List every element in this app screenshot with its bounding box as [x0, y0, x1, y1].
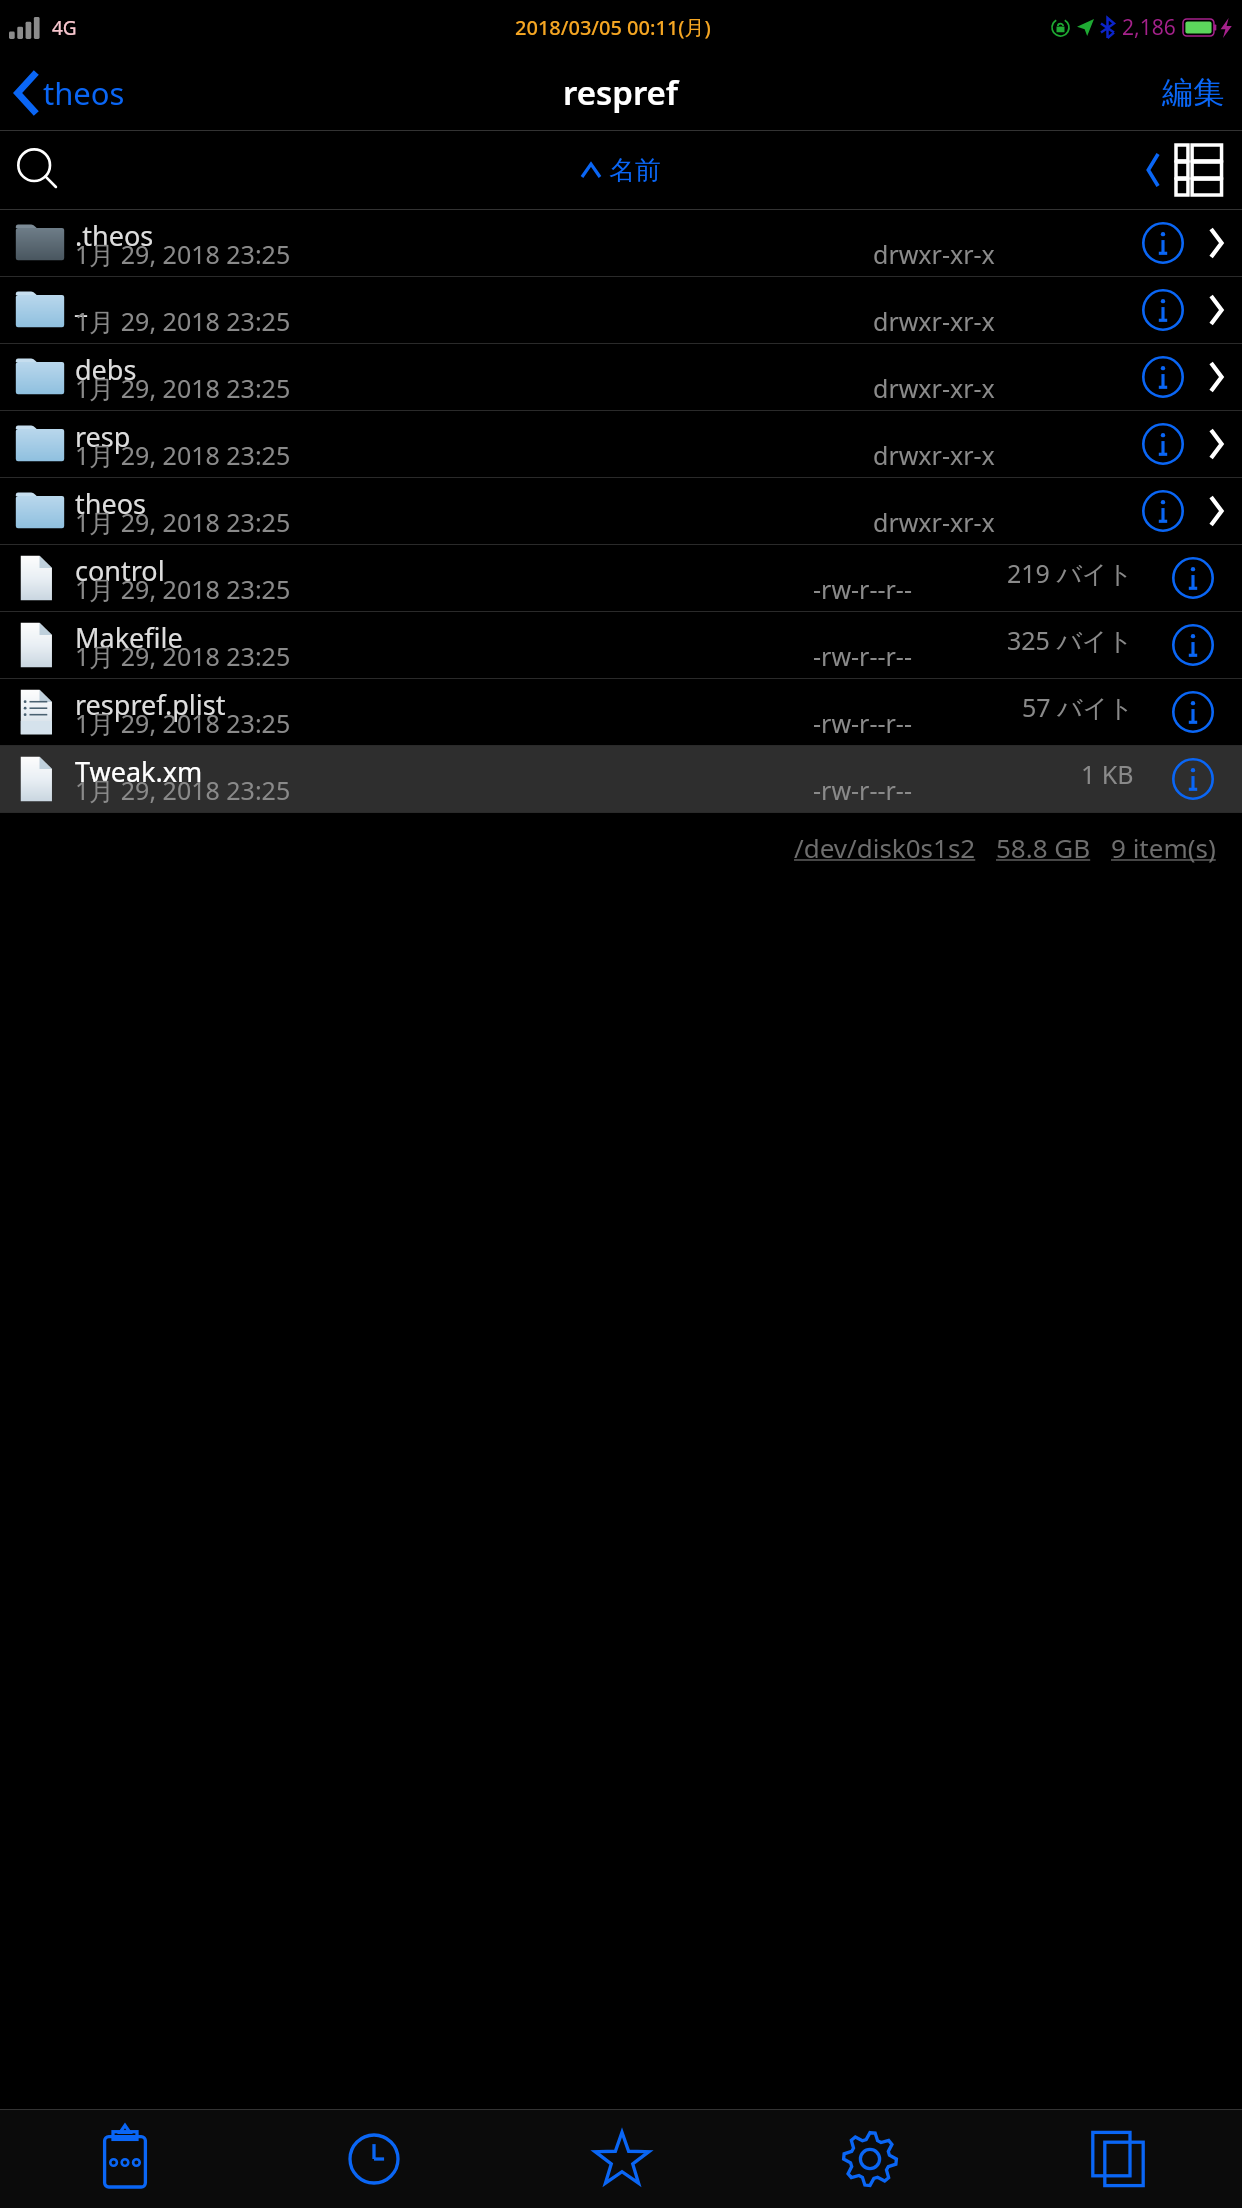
button[interactable]: Info: [1169, 688, 1217, 736]
button[interactable]: theos: [0, 478, 1242, 544]
button[interactable]: Favorites: [498, 2110, 746, 2208]
staticText: 1月 29, 2018 23:25: [75, 572, 291, 606]
button[interactable]: Info: [1169, 554, 1217, 602]
button[interactable]: Info: [1169, 621, 1217, 669]
staticText: Makefile: [75, 619, 183, 656]
staticText: -rw-r--r--: [813, 706, 912, 740]
button[interactable]: 編集: [1144, 61, 1242, 124]
staticText: drwxr-xr-x: [873, 505, 995, 539]
staticText: -rw-r--r--: [813, 572, 912, 606]
staticText: drwxr-xr-x: [873, 304, 995, 338]
staticText: 名前: [609, 154, 661, 187]
button[interactable]: 名前: [566, 144, 677, 197]
staticText: debs: [75, 351, 137, 388]
staticText: 1月 29, 2018 23:25: [75, 773, 291, 807]
button[interactable]: theos: [0, 63, 139, 123]
button[interactable]: Open: [1194, 355, 1238, 399]
staticText: 1 KB: [1081, 757, 1134, 791]
button[interactable]: Search: [0, 146, 76, 194]
staticText: theos: [43, 72, 125, 114]
button[interactable]: Info: [1139, 353, 1187, 401]
button[interactable]: 58.8 GB: [996, 830, 1091, 865]
button[interactable]: View mode: [1172, 137, 1232, 203]
button[interactable]: Info: [1139, 219, 1187, 267]
button[interactable]: Info: [1139, 286, 1187, 334]
button[interactable]: Settings: [746, 2110, 994, 2208]
button[interactable]: Info: [1169, 755, 1217, 803]
staticText: 1月 29, 2018 23:25: [75, 639, 291, 673]
staticText: drwxr-xr-x: [873, 237, 995, 271]
staticText: resp: [75, 418, 131, 455]
button[interactable]: Recents: [249, 2110, 498, 2208]
staticText: drwxr-xr-x: [873, 438, 995, 472]
staticText: -rw-r--r--: [813, 773, 912, 807]
button[interactable]: Info: [1139, 420, 1187, 468]
staticText: control: [75, 552, 165, 589]
staticText: respref.plist: [75, 686, 226, 723]
button[interactable]: /dev/disk0s1s2: [794, 830, 976, 865]
staticText: 1月 29, 2018 23:25: [75, 237, 291, 271]
button[interactable]: 9 item(s): [1111, 830, 1216, 865]
staticText: 57 バイト: [1022, 690, 1134, 724]
staticText: theos: [75, 485, 146, 522]
staticText: respref: [563, 70, 679, 115]
button[interactable]: Clipboard: [0, 2110, 249, 2208]
staticText: 325 バイト: [1007, 623, 1134, 657]
staticText: _: [75, 284, 87, 321]
button[interactable]: Windows: [994, 2110, 1242, 2208]
button[interactable]: Open: [1194, 422, 1238, 466]
button[interactable]: Open: [1194, 221, 1238, 265]
button[interactable]: _: [0, 277, 1242, 343]
staticText: drwxr-xr-x: [873, 371, 995, 405]
staticText: Tweak.xm: [75, 753, 203, 790]
button[interactable]: respref.plist: [0, 679, 1242, 745]
staticText: 1月 29, 2018 23:25: [75, 371, 291, 405]
button[interactable]: control: [0, 545, 1242, 611]
staticText: -rw-r--r--: [813, 639, 912, 673]
button[interactable]: .theos: [0, 210, 1242, 276]
staticText: 2,186: [1122, 13, 1176, 42]
button[interactable]: Open: [1194, 489, 1238, 533]
staticText: 219 バイト: [1007, 556, 1134, 590]
button[interactable]: debs: [0, 344, 1242, 410]
button[interactable]: Info: [1139, 487, 1187, 535]
staticText: 1月 29, 2018 23:25: [75, 438, 291, 472]
button[interactable]: Previous: [1139, 146, 1168, 194]
staticText: 4G: [52, 15, 77, 41]
staticText: 1月 29, 2018 23:25: [75, 505, 291, 539]
button[interactable]: Tweak.xm: [0, 746, 1242, 812]
staticText: 1月 29, 2018 23:25: [75, 706, 291, 740]
button[interactable]: Open: [1194, 288, 1238, 332]
button[interactable]: Makefile: [0, 612, 1242, 678]
staticText: 1月 29, 2018 23:25: [75, 304, 291, 338]
button[interactable]: resp: [0, 411, 1242, 477]
staticText: 2018/03/05 00:11(月): [515, 14, 711, 41]
staticText: .theos: [75, 217, 154, 254]
